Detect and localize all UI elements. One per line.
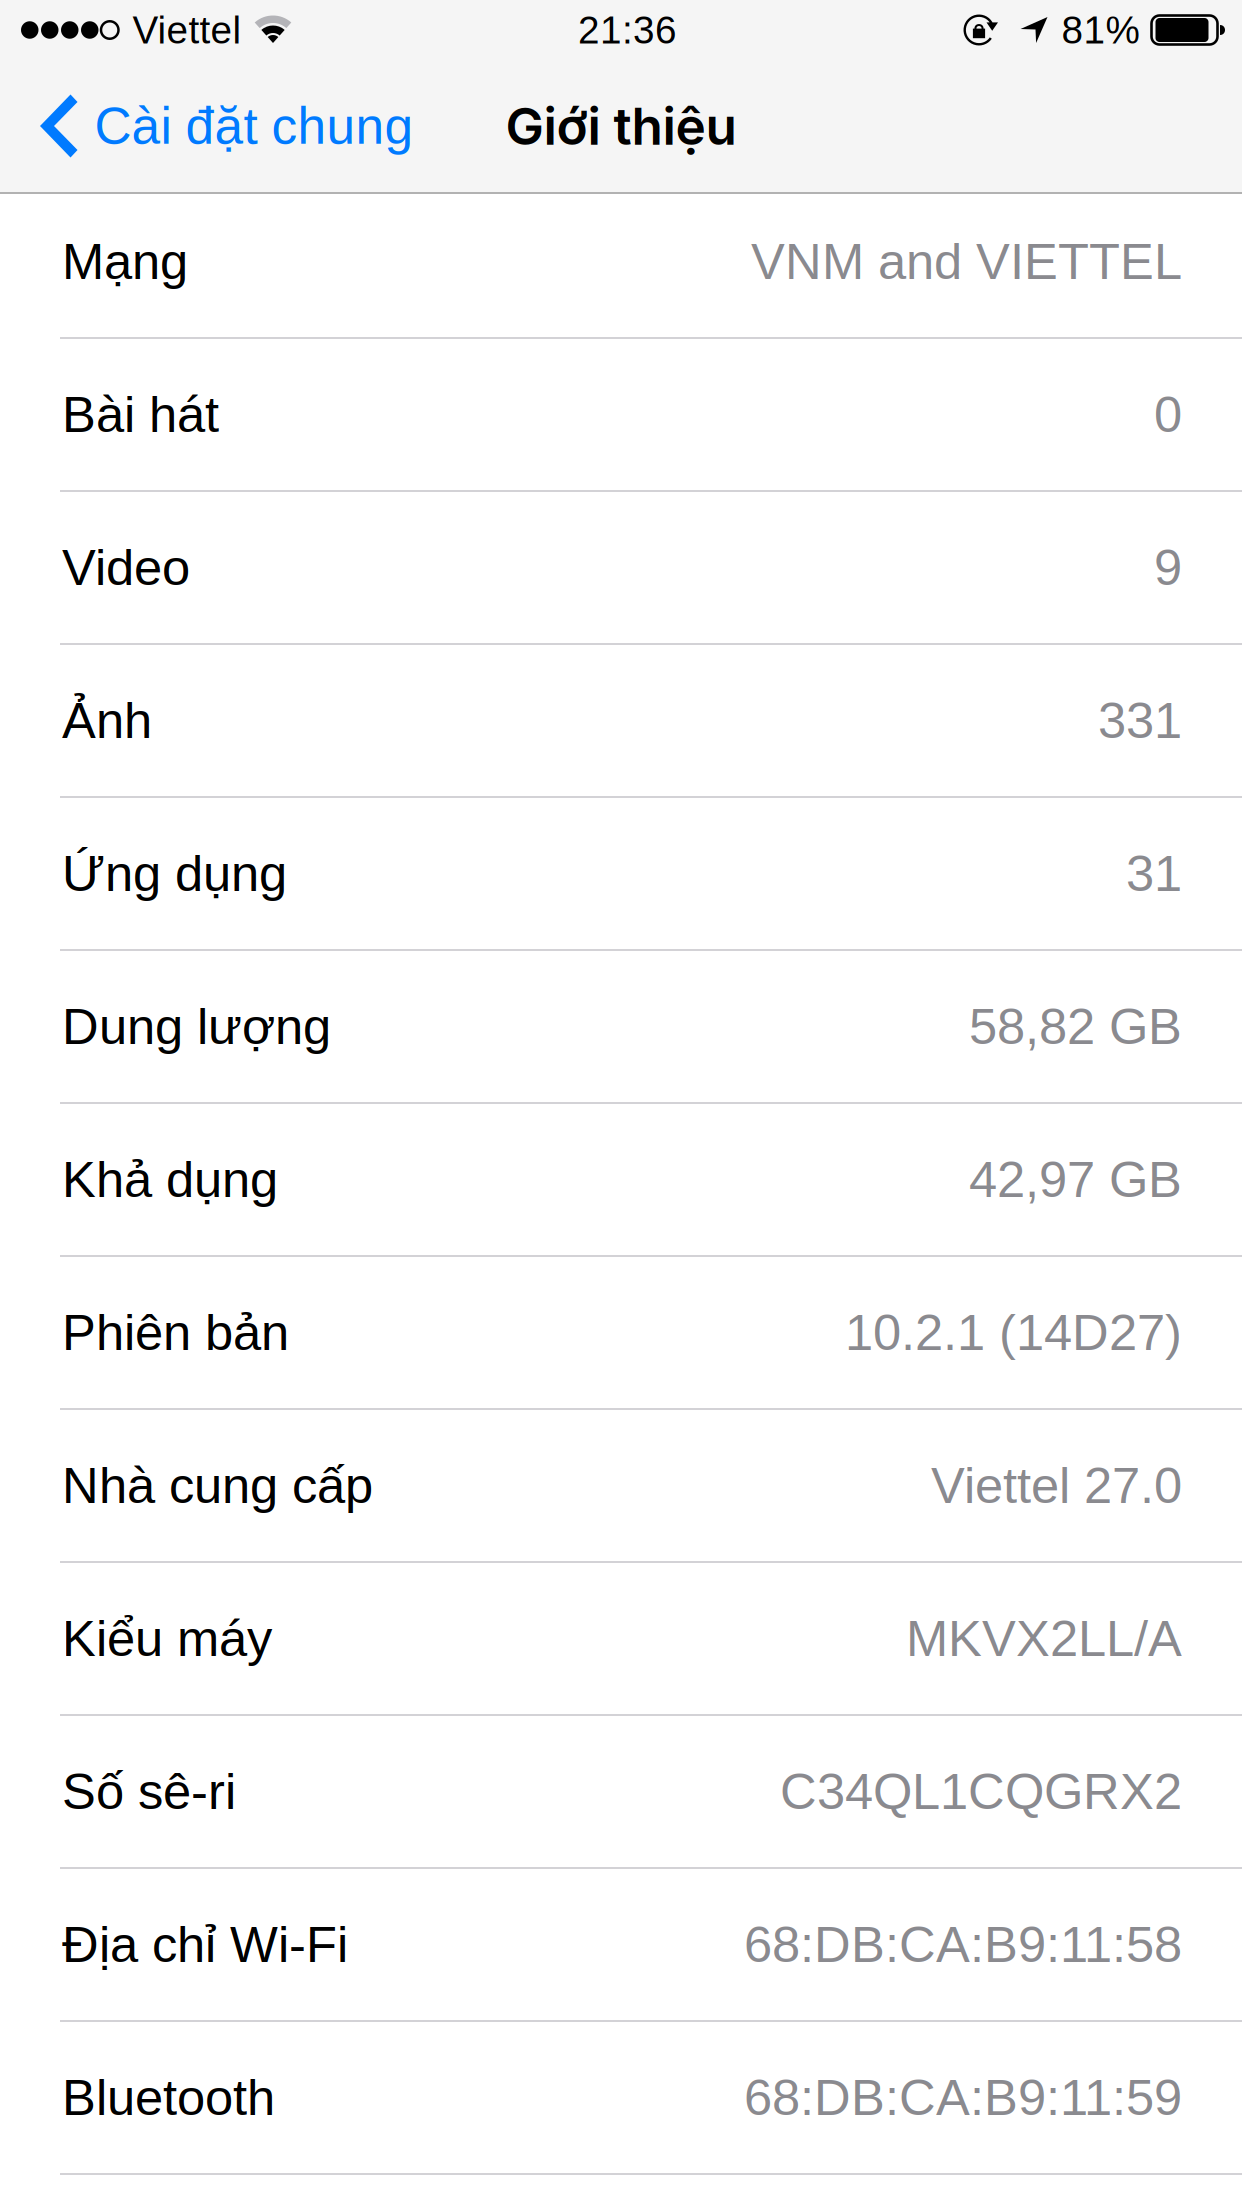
staticText: 0	[1154, 386, 1182, 443]
staticText: Viettel 27.0	[931, 1457, 1182, 1514]
staticText: 68:DB:CA:B9:11:58	[744, 1916, 1182, 1973]
staticText: VNM and VIETTEL	[751, 233, 1182, 290]
staticText: 9	[1154, 539, 1182, 596]
staticText: Bluetooth	[62, 2069, 275, 2126]
staticText: Phiên bản	[62, 1304, 289, 1361]
button[interactable]: Số sê-ri	[0, 1716, 1242, 1869]
staticText: Cài đặt chung	[94, 97, 413, 155]
button[interactable]: Phiên bản	[0, 1257, 1242, 1410]
staticText: Mạng	[62, 233, 188, 290]
button[interactable]: Video	[0, 492, 1242, 645]
button[interactable]: Địa chỉ Wi-Fi	[0, 1869, 1242, 2022]
button[interactable]: Khả dụng	[0, 1104, 1242, 1257]
staticText: Ứng dụng	[62, 845, 287, 902]
staticText: 331	[1098, 692, 1182, 749]
staticText: Địa chỉ Wi-Fi	[62, 1916, 348, 1973]
staticText: MKVX2LL/A	[906, 1610, 1182, 1667]
button[interactable]: Bài hát	[0, 339, 1242, 492]
staticText: 68:DB:CA:B9:11:59	[744, 2069, 1182, 2126]
staticText: Nhà cung cấp	[62, 1457, 373, 1514]
staticText: 10.2.1 (14D27)	[845, 1304, 1182, 1361]
button[interactable]: Nhà cung cấp	[0, 1410, 1242, 1563]
button[interactable]: Mạng	[0, 186, 1242, 339]
staticText: Khả dụng	[62, 1151, 278, 1208]
button[interactable]: Ứng dụng	[0, 798, 1242, 951]
staticText: Bài hát	[62, 386, 219, 443]
staticText: 58,82 GB	[969, 998, 1182, 1055]
staticText: Số sê-ri	[62, 1763, 236, 1820]
staticText: Video	[62, 539, 190, 596]
staticText: Giới thiệu	[505, 95, 736, 157]
button[interactable]: Ảnh	[0, 645, 1242, 798]
button[interactable]: Cài đặt chung	[0, 60, 437, 192]
button[interactable]: Kiểu máy	[0, 1563, 1242, 1716]
staticText: 81%	[1061, 8, 1139, 52]
staticText: Viettel	[132, 8, 241, 52]
button[interactable]: Dung lượng	[0, 951, 1242, 1104]
button[interactable]: Bluetooth	[0, 2022, 1242, 2175]
staticText: C34QL1CQGRX2	[780, 1763, 1182, 1820]
staticText: 21:36	[578, 8, 677, 52]
staticText: 31	[1126, 845, 1182, 902]
staticText: Ảnh	[62, 692, 152, 749]
staticText: Dung lượng	[62, 998, 331, 1055]
staticText: Kiểu máy	[62, 1610, 272, 1667]
staticText: 42,97 GB	[969, 1151, 1182, 1208]
